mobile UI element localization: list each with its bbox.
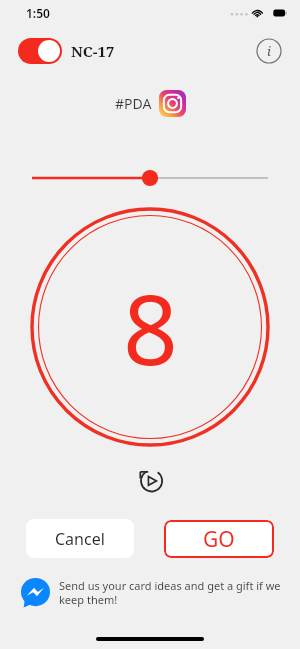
button[interactable]: Information xyxy=(256,38,282,64)
button[interactable]: Send us your card ideas and get a gift i… xyxy=(21,578,284,607)
staticText: Send us your card ideas and get a gift i… xyxy=(59,578,284,607)
staticText: i xyxy=(267,42,271,60)
staticText: Cancel xyxy=(55,528,105,550)
button[interactable]: Rounds slider xyxy=(0,164,300,192)
staticText: 1:50 xyxy=(26,5,50,21)
button[interactable]: NC-17 rating toggle, on xyxy=(18,38,62,64)
staticText: GO xyxy=(203,525,235,554)
button[interactable]: Replay xyxy=(134,463,166,495)
button[interactable]: Instagram xyxy=(159,90,186,117)
button[interactable]: Cancel xyxy=(26,519,134,558)
button[interactable]: Countdown 8 xyxy=(29,206,271,448)
staticText: #PDA xyxy=(115,94,152,113)
button[interactable]: GO xyxy=(164,520,274,558)
staticText: 8 xyxy=(123,262,178,393)
staticText: NC-17 xyxy=(71,41,115,61)
